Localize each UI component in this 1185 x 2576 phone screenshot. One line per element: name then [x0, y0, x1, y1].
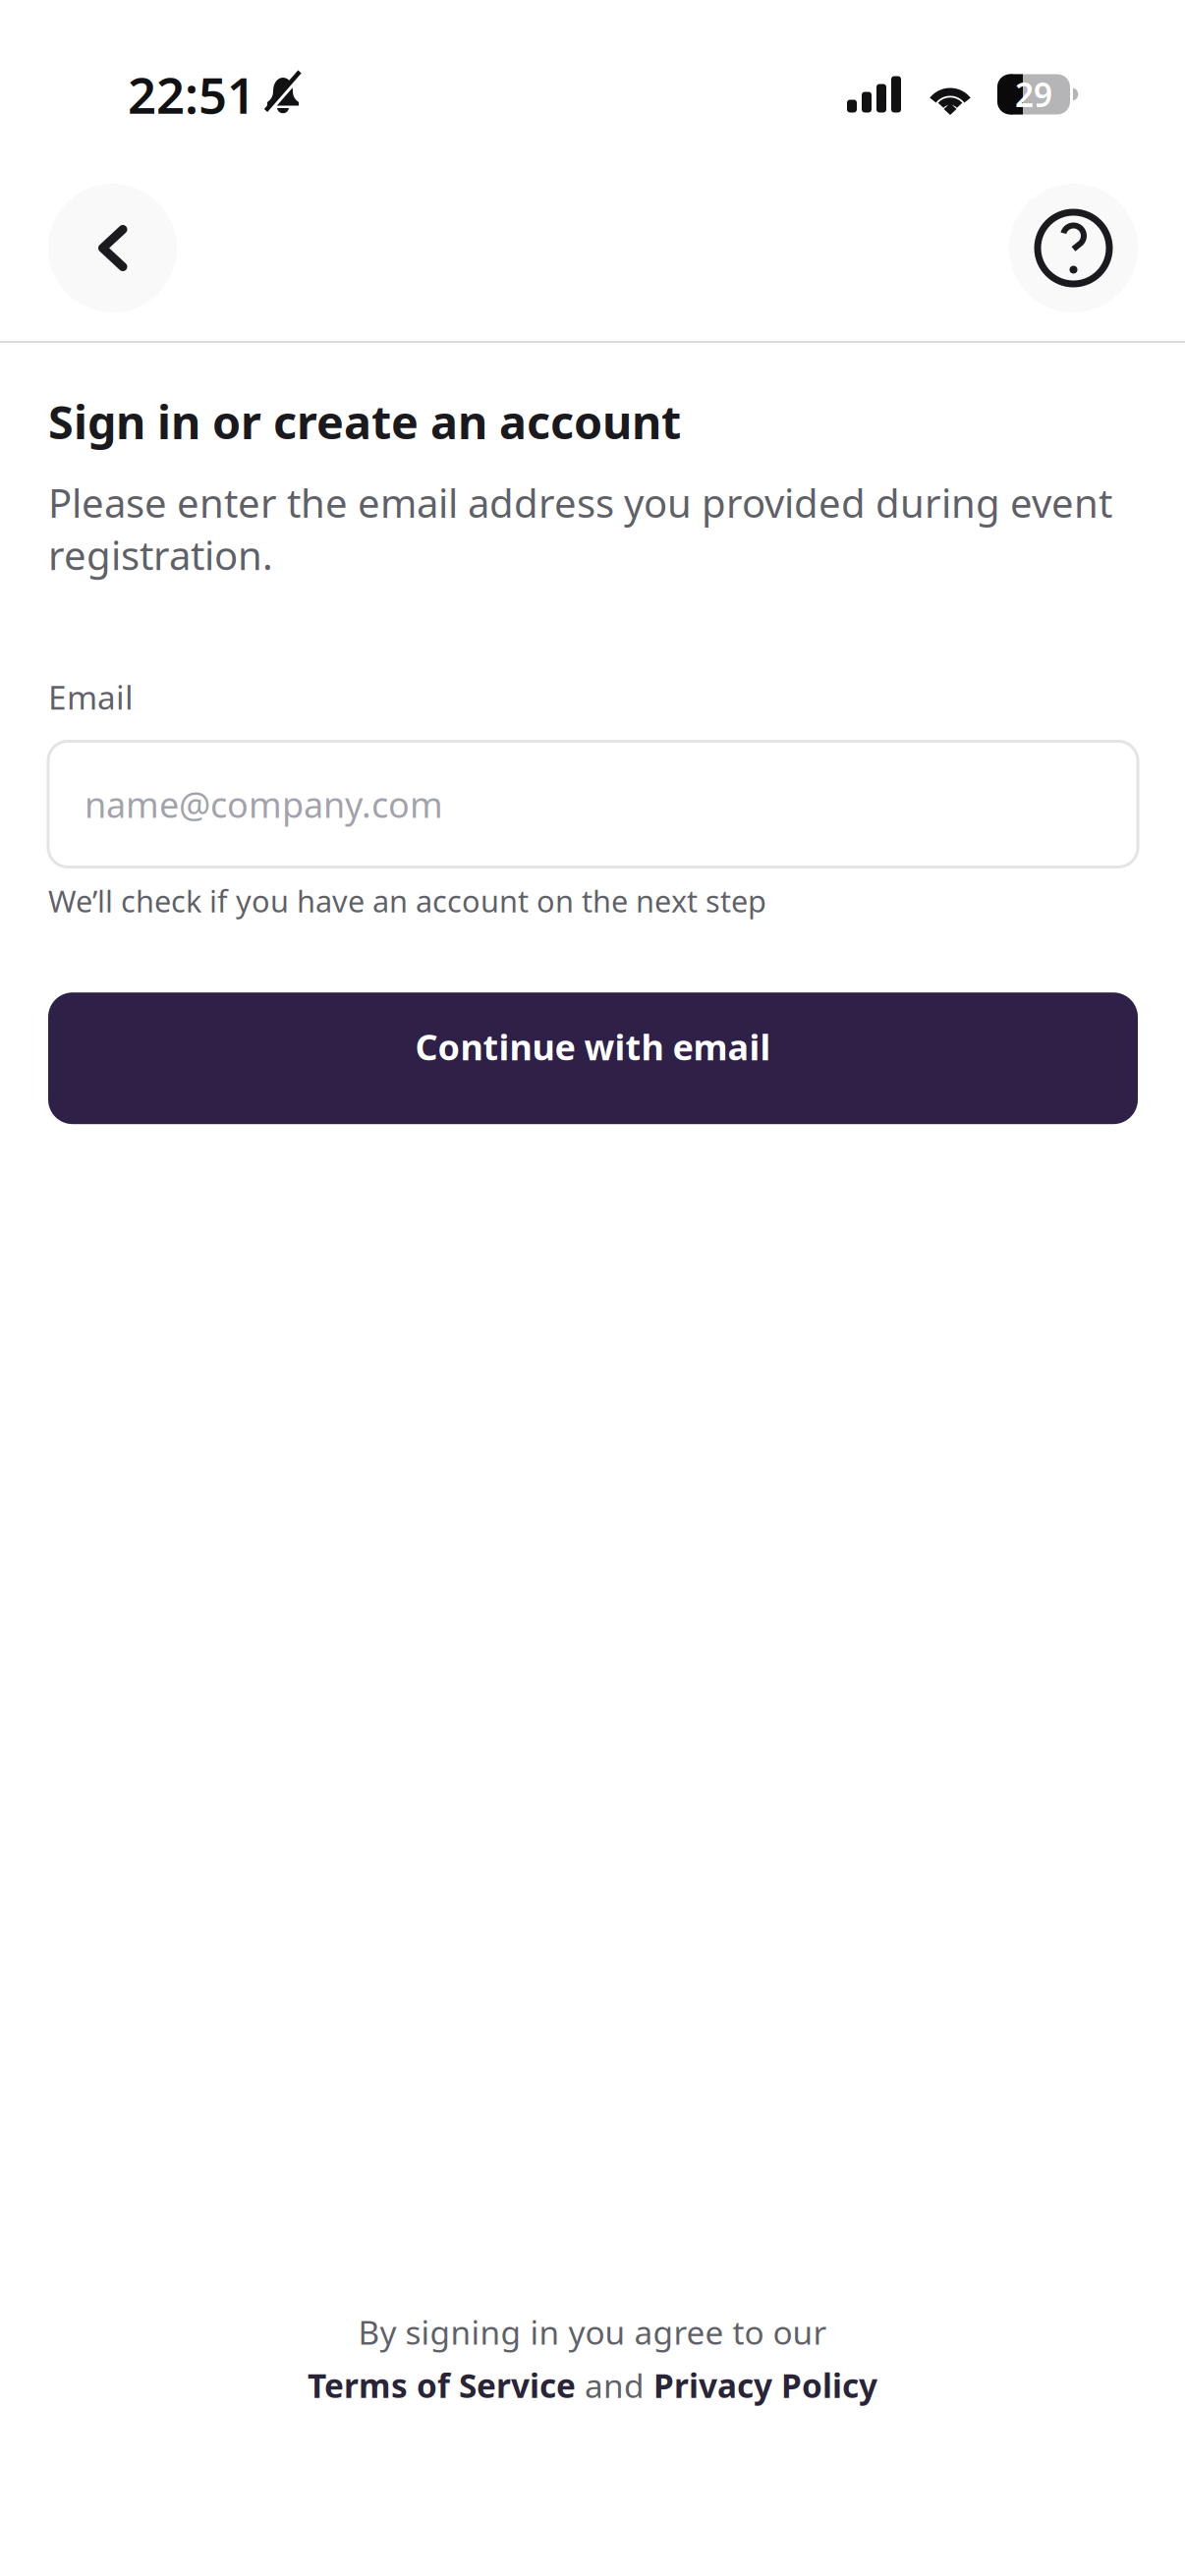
button[interactable]: Continue with email — [48, 992, 1138, 1124]
button[interactable]: Terms of Service — [308, 2363, 576, 2407]
staticText: Privacy Policy — [653, 2363, 877, 2407]
button[interactable]: Back — [48, 184, 177, 312]
button[interactable]: Privacy Policy — [653, 2363, 877, 2407]
staticText: By signing in you agree to our — [358, 2310, 827, 2354]
button[interactable]: Help — [1009, 184, 1138, 312]
staticText: name@company.com — [85, 781, 443, 828]
staticText: We’ll check if you have an account on th… — [48, 881, 766, 921]
staticText: 22:51 — [128, 61, 255, 127]
staticText: Email — [48, 675, 134, 719]
staticText: and — [576, 2363, 653, 2407]
staticText: 29 — [1015, 73, 1052, 116]
staticText: Continue with email — [415, 1023, 771, 1070]
staticText: Sign in or create an account — [48, 391, 681, 452]
staticText: Terms of Service — [308, 2363, 576, 2407]
staticText: Please enter the email address you provi… — [48, 476, 1112, 581]
